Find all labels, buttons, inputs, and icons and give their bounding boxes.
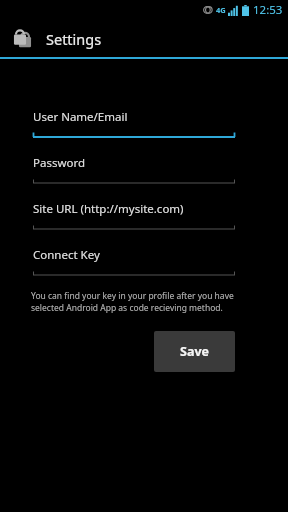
staticText: Connect Key (33, 247, 100, 263)
staticText: User Name/Email (33, 109, 128, 125)
button[interactable]: Site URL (http://mysite.com) (33, 201, 235, 230)
other: App icon (10, 26, 35, 51)
button[interactable]: User Name/Email (33, 109, 235, 138)
button[interactable]: Save (154, 331, 235, 372)
button[interactable]: Connect Key (33, 247, 235, 276)
button[interactable]: Password (33, 155, 235, 184)
staticText: 4G (216, 5, 226, 15)
staticText: You can find your key in your profile af… (31, 290, 234, 314)
staticText: Site URL (http://mysite.com) (33, 201, 184, 217)
staticText: Password (33, 155, 86, 171)
staticText: Settings (46, 29, 102, 49)
staticText: 12:53 (253, 2, 283, 18)
staticText: Save (180, 343, 209, 360)
